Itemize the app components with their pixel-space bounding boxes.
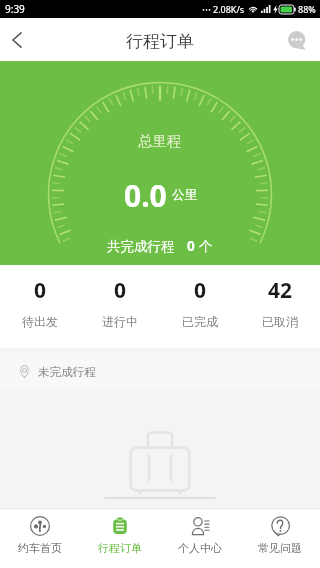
button[interactable]: 42 bbox=[240, 265, 320, 348]
staticText: 0 bbox=[187, 237, 195, 255]
button[interactable]: 常见问题 bbox=[240, 509, 320, 568]
staticText: 公里 bbox=[172, 187, 197, 203]
staticText: 行程订单 bbox=[98, 541, 142, 555]
button[interactable]: 0 bbox=[160, 265, 240, 348]
button[interactable]: 0 bbox=[0, 265, 80, 348]
button[interactable]: 0 bbox=[80, 265, 160, 348]
staticText: 88% bbox=[298, 3, 316, 15]
staticText: 未完成行程 bbox=[38, 365, 96, 379]
staticText: 0 bbox=[114, 276, 127, 305]
staticText: 个人中心 bbox=[178, 541, 222, 555]
staticText: 已取消 bbox=[262, 314, 298, 329]
staticText: 行程订单 bbox=[126, 31, 194, 52]
staticText: 0.0 bbox=[124, 175, 167, 216]
staticText: 已完成 bbox=[182, 314, 218, 329]
button[interactable]: Back bbox=[0, 22, 36, 58]
button[interactable]: 行程订单 bbox=[80, 509, 160, 568]
button[interactable]: 约车首页 bbox=[0, 509, 80, 568]
button[interactable]: Messages bbox=[287, 30, 307, 50]
staticText: 总里程 bbox=[138, 132, 182, 150]
staticText: 0 bbox=[34, 276, 47, 305]
staticText: 共完成行程 bbox=[107, 238, 175, 255]
staticText: 常见问题 bbox=[258, 541, 302, 555]
staticText: 进行中 bbox=[102, 314, 138, 329]
button[interactable]: 个人中心 bbox=[160, 509, 240, 568]
staticText: 2.08K/s bbox=[213, 3, 245, 15]
staticText: 待出发 bbox=[22, 314, 58, 329]
staticText: 9:39 bbox=[5, 2, 25, 16]
staticText: 个 bbox=[199, 238, 213, 255]
staticText: 约车首页 bbox=[18, 541, 62, 555]
staticText: 0 bbox=[194, 276, 207, 305]
staticText: 42 bbox=[268, 276, 293, 305]
